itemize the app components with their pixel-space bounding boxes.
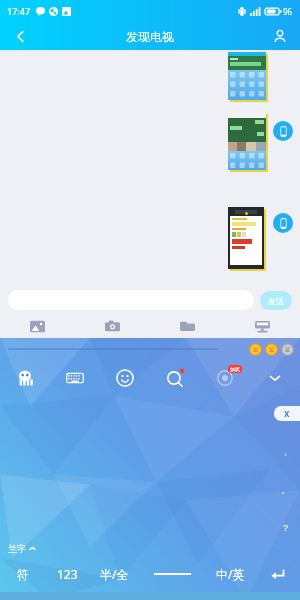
button[interactable]: Space (139, 556, 206, 592)
button[interactable]: 半/全 (90, 556, 139, 592)
button[interactable]: Coin (281, 343, 294, 356)
staticText: 。 (281, 484, 290, 495)
staticText: 发现电视 (126, 29, 174, 44)
button[interactable]: ， (277, 443, 293, 459)
button[interactable]: Profile (260, 22, 300, 50)
button[interactable]: ？ (277, 519, 293, 535)
button[interactable]: 兰字 (8, 543, 36, 554)
staticText: 抽奖 (230, 366, 240, 372)
button[interactable]: Coin (249, 343, 262, 356)
staticText: ？ (281, 522, 290, 533)
button[interactable]: Back (0, 22, 40, 50)
staticText: 17:47 (7, 5, 31, 17)
button[interactable]: Gallery (0, 315, 75, 338)
button[interactable]: Keyboard layout (50, 360, 100, 396)
button[interactable]: Coin (265, 343, 278, 356)
staticText: 发送 (268, 296, 284, 306)
button[interactable]: 发送 (260, 291, 292, 310)
button[interactable]: 。 (277, 481, 293, 497)
staticText: ， (281, 446, 290, 457)
button[interactable]: Logo (0, 360, 50, 396)
button[interactable]: 中/英 (206, 556, 255, 592)
staticText: X (284, 408, 290, 419)
staticText: 兰字 (8, 543, 26, 554)
staticText: 中/英 (216, 566, 245, 582)
staticText: 123 (57, 566, 78, 582)
button[interactable]: Camera (75, 315, 150, 338)
staticText: 96 (283, 6, 293, 17)
staticText: 半/全 (100, 566, 129, 582)
button[interactable]: Hide keyboard (250, 360, 300, 396)
button[interactable]: Backspace (274, 406, 300, 421)
button[interactable]: Emoji (100, 360, 150, 396)
button[interactable]: Send to TV (273, 213, 293, 233)
button[interactable]: Enter (255, 556, 300, 592)
button[interactable]: Send to TV (273, 121, 293, 141)
button[interactable]: 123 (45, 556, 90, 592)
staticText: 符 (17, 567, 29, 582)
button[interactable]: Screen (225, 315, 300, 338)
button[interactable]: Rewards (200, 360, 250, 396)
button[interactable]: Files (150, 315, 225, 338)
button[interactable]: 符 (0, 556, 45, 592)
button[interactable]: Search (150, 360, 200, 396)
